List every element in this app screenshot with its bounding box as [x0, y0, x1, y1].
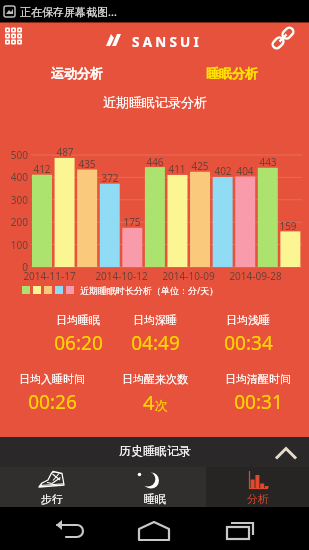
button[interactable]	[0, 22, 32, 58]
staticText: 00:31	[234, 389, 283, 415]
staticText: 446	[146, 155, 164, 169]
button[interactable]	[264, 22, 304, 58]
staticText: 435	[78, 157, 96, 171]
staticText: 正在保存屏幕截图...	[20, 4, 117, 19]
staticText: 372	[101, 171, 119, 185]
staticText: 00:26	[28, 389, 77, 415]
staticText: 日均浅睡	[226, 313, 270, 327]
staticText: 402	[214, 164, 232, 178]
button[interactable]	[215, 512, 265, 550]
staticText: 2014-11-17	[23, 269, 76, 283]
staticText: SANSUI	[132, 33, 202, 51]
staticText: 06:20	[54, 330, 103, 356]
button[interactable]: 分析	[206, 467, 309, 507]
staticText: 2014-09-28	[229, 269, 282, 283]
staticText: 分析	[247, 492, 269, 506]
staticText: 日均醒来次数	[122, 372, 188, 386]
button[interactable]	[44, 512, 94, 550]
staticText: 近期睡眠时长分析（单位：分/天）	[80, 284, 219, 296]
staticText: 412	[33, 162, 51, 176]
staticText: 日均清醒时间	[225, 372, 291, 386]
staticText: 睡眠分析	[206, 65, 258, 81]
staticText: 日均入睡时间	[19, 372, 85, 386]
staticText: 00:34	[224, 330, 273, 356]
staticText: 300	[10, 193, 28, 207]
staticText: 04:49	[131, 330, 180, 356]
staticText: 日均睡眠	[56, 313, 100, 327]
staticText: 近期睡眠记录分析	[103, 94, 207, 110]
button[interactable]: 历史睡眠记录	[0, 437, 309, 467]
button[interactable]: 运动分析	[0, 58, 154, 88]
button[interactable]: 步行	[0, 467, 103, 507]
staticText: 100	[10, 238, 28, 252]
staticText: 411	[168, 162, 186, 176]
button[interactable]: 睡眠	[103, 467, 206, 507]
staticText: 日均深睡	[133, 313, 177, 327]
staticText: 4	[143, 389, 155, 415]
staticText: 2014-10-09	[162, 269, 215, 283]
staticText: 443	[259, 155, 277, 169]
button[interactable]	[129, 512, 179, 550]
staticText: 2014-10-12	[95, 269, 148, 283]
staticText: 睡眠	[144, 492, 166, 506]
staticText: 200	[10, 215, 28, 229]
staticText: 0	[22, 260, 28, 274]
staticText: 404	[236, 164, 254, 178]
staticText: 步行	[41, 492, 63, 506]
button[interactable]: 睡眠分析	[154, 58, 309, 88]
staticText: 500	[10, 148, 28, 162]
staticText: 425	[191, 159, 209, 173]
staticText: 运动分析	[51, 65, 103, 81]
staticText: 次	[155, 397, 168, 413]
staticText: 159	[279, 219, 297, 233]
staticText: 400	[10, 170, 28, 184]
staticText: 487	[56, 145, 74, 159]
staticText: 175	[123, 215, 141, 229]
staticText: 历史睡眠记录	[119, 443, 191, 458]
